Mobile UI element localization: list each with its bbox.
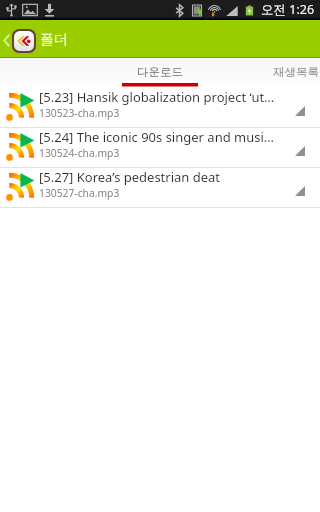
button[interactable]: More options: [292, 143, 308, 159]
button[interactable]: [5.23] Hansik globalization project ‘ut…: [0, 88, 320, 127]
button[interactable]: 다운로드: [92, 58, 228, 86]
button[interactable]: 재생목록: [228, 58, 320, 86]
staticText: [5.27] Korea’s pedestrian deat: [39, 168, 221, 186]
button[interactable]: More options: [292, 103, 308, 119]
staticText: [5.24] The iconic 90s singer and musi…: [39, 128, 275, 146]
staticText: 재생목록: [273, 65, 319, 79]
button[interactable]: More options: [292, 183, 308, 199]
staticText: 130524-cha.mp3: [39, 146, 120, 160]
staticText: 폴더: [40, 31, 68, 49]
staticText: 130527-cha.mp3: [39, 186, 120, 200]
other: Back: [3, 34, 10, 47]
button[interactable]: [5.24] The iconic 90s singer and musi…: [0, 128, 320, 167]
staticText: 다운로드: [137, 65, 183, 79]
staticText: 오전 1:26: [261, 1, 315, 18]
button[interactable]: Back: [0, 20, 320, 58]
staticText: 130523-cha.mp3: [39, 106, 120, 120]
button[interactable]: [5.27] Korea’s pedestrian deat: [0, 168, 320, 207]
staticText: [5.23] Hansik globalization project ‘ut…: [39, 88, 275, 106]
